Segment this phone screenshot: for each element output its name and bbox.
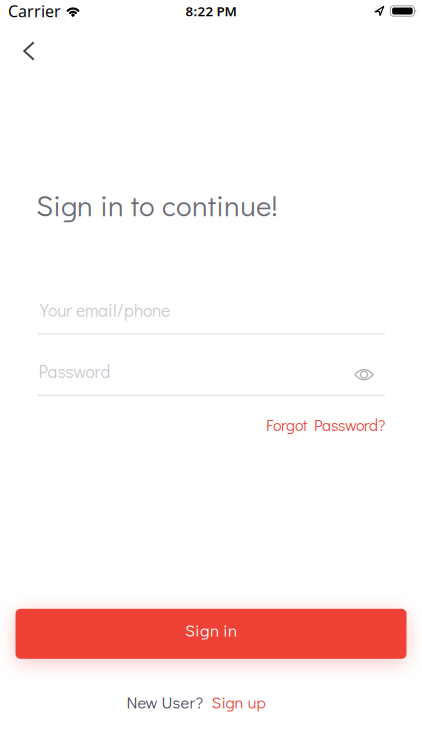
staticText: Sign up: [211, 691, 265, 713]
staticText: New User?: [126, 691, 203, 713]
staticText: Password: [38, 360, 110, 383]
button[interactable]: Show password: [354, 369, 374, 381]
staticText: Your email/phone: [40, 298, 170, 321]
button[interactable]: Sign in: [15, 609, 406, 659]
staticText: Forgot Password?: [266, 414, 385, 435]
staticText: Sign in to continue!: [36, 185, 278, 224]
button[interactable]: Back: [15, 34, 43, 68]
staticText: Sign in: [185, 619, 237, 641]
button[interactable]: Forgot Password?: [266, 414, 385, 435]
staticText: 8:22 PM: [185, 2, 236, 20]
staticText: Carrier: [8, 0, 61, 22]
button[interactable]: Sign up: [211, 691, 265, 713]
